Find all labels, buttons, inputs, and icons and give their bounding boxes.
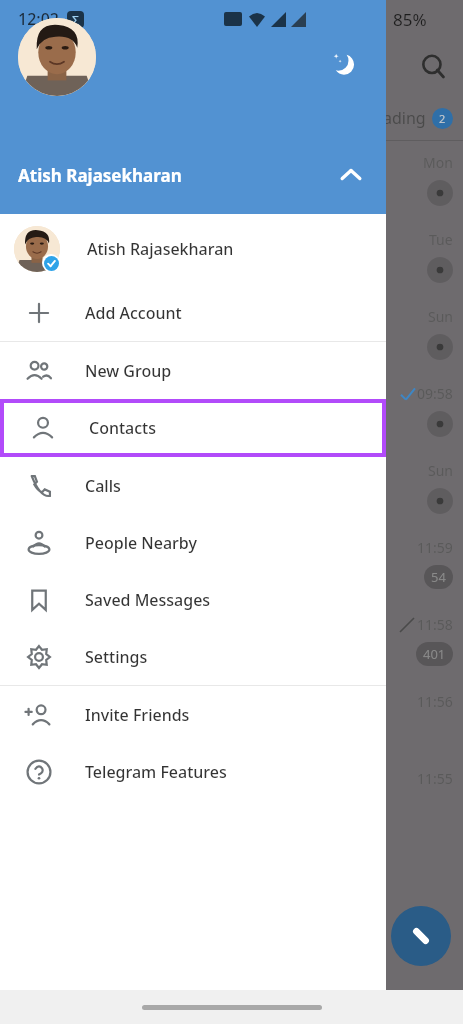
staticText: 09:58 <box>417 384 453 403</box>
staticText: Atish Rajasekharan <box>18 164 182 187</box>
staticText: Sun <box>428 307 453 326</box>
staticText: eading <box>374 107 426 129</box>
staticText: Sun <box>428 461 453 480</box>
button[interactable]: Night mode <box>324 44 364 84</box>
staticText: 11:58 <box>417 615 453 634</box>
staticText: Mon <box>423 153 453 172</box>
staticText: New Group <box>85 360 172 382</box>
staticText: People Nearby <box>85 532 197 554</box>
staticText: Atish Rajasekharan <box>87 238 234 260</box>
button[interactable]: Calls <box>0 457 386 514</box>
button[interactable]: Expand accounts <box>334 158 368 192</box>
button[interactable]: Invite Friends <box>0 686 386 743</box>
staticText: Invite Friends <box>85 704 190 726</box>
staticText: 12:02 <box>18 8 59 30</box>
staticText: Settings <box>85 646 148 668</box>
staticText: 54 <box>431 568 446 586</box>
staticText: 11:56 <box>417 692 453 711</box>
staticText: Add Account <box>85 302 182 324</box>
button[interactable]: Add Account <box>0 284 386 341</box>
button[interactable]: People Nearby <box>0 514 386 571</box>
button[interactable]: New Group <box>0 342 386 399</box>
staticText: Contacts <box>89 417 157 439</box>
button[interactable]: Atish Rajasekharan <box>0 214 386 284</box>
button[interactable]: Contacts <box>4 403 382 453</box>
staticText: Tue <box>429 230 453 249</box>
button[interactable]: Saved Messages <box>0 571 386 628</box>
staticText: 11:59 <box>417 538 453 557</box>
staticText: Telegram Features <box>85 761 227 783</box>
staticText: Calls <box>85 475 121 497</box>
staticText: Saved Messages <box>85 589 211 611</box>
staticText: Σ <box>72 12 79 28</box>
button[interactable]: Profile photo <box>18 18 96 96</box>
button[interactable]: Settings <box>0 628 386 685</box>
button[interactable]: New message <box>391 906 451 966</box>
button[interactable]: Telegram Features <box>0 743 386 800</box>
staticText: 2 <box>439 111 446 126</box>
staticText: 401 <box>423 645 446 663</box>
staticText: 11:55 <box>417 769 453 788</box>
staticText: 85% <box>393 8 427 31</box>
